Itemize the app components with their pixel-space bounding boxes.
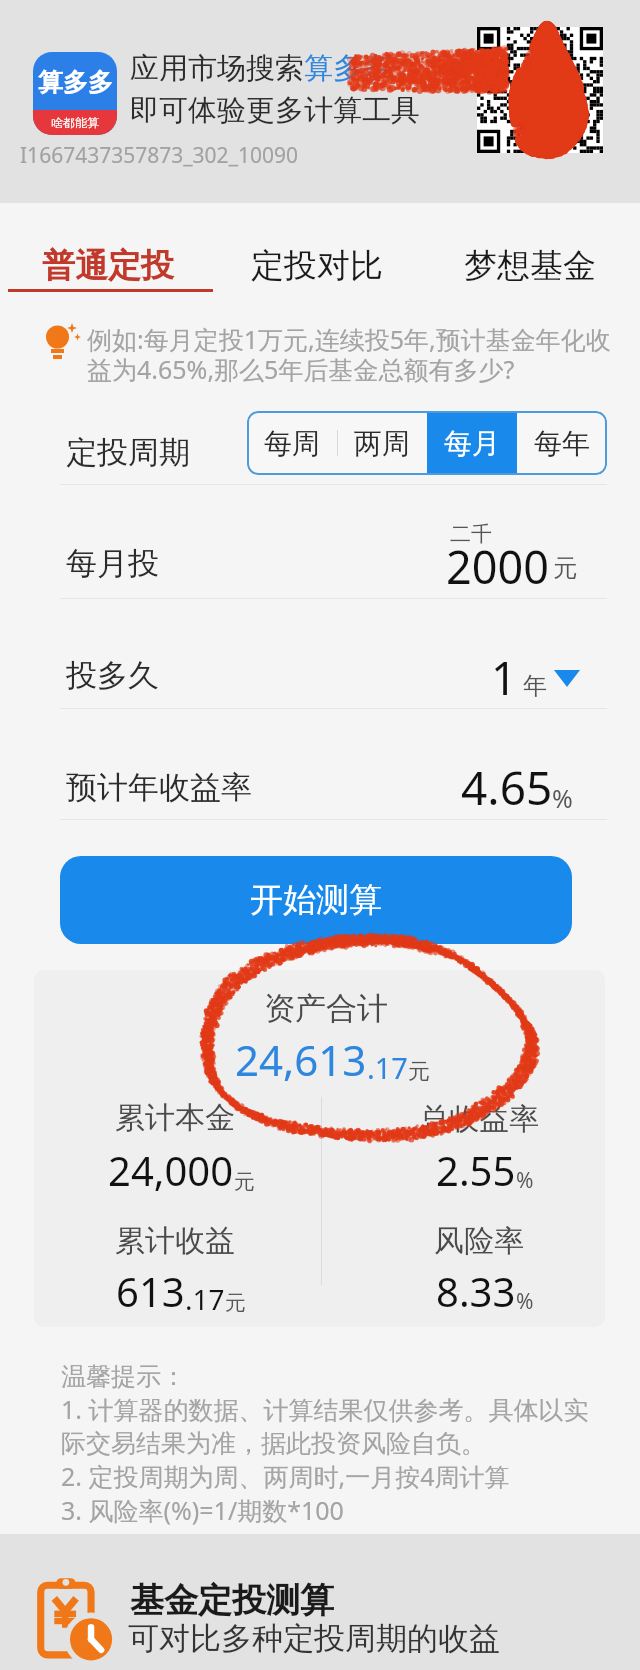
staticText: 基金定投测算 <box>130 1579 334 1622</box>
button[interactable]: 算多多 app icon <box>33 52 117 135</box>
staticText: 温馨提示： 1. 计算器的数据、计算结果仅供参考。具体以实 际交易结果为准，据此… <box>61 1361 589 1527</box>
staticText: 普通定投 <box>42 245 174 287</box>
staticText: 定投周期 <box>66 433 190 472</box>
staticText: 元 <box>408 1058 430 1086</box>
staticText: I1667437357873_302_10090 <box>20 141 299 170</box>
staticText: 2.55 <box>436 1143 516 1197</box>
staticText: 总收益率 <box>419 1100 539 1138</box>
button[interactable]: 定投对比 <box>239 243 395 289</box>
button[interactable]: 梦想基金 <box>452 243 608 289</box>
staticText: 元 <box>553 553 577 583</box>
staticText: 开始测算 <box>250 879 382 921</box>
staticText: 可对比多种定投周期的收益 <box>128 1619 500 1658</box>
staticText: 定投对比 <box>251 245 383 287</box>
button[interactable]: 开始测算 <box>60 856 572 944</box>
staticText: 24,000 <box>108 1143 234 1197</box>
staticText: 资产合计 <box>264 989 388 1028</box>
staticText: 预计年收益率 <box>66 768 252 807</box>
staticText: 应用市场搜索算多多 <box>130 50 391 87</box>
staticText: 两周 <box>354 426 410 461</box>
staticText: 每周 <box>264 426 320 461</box>
staticText: 2000 <box>446 536 549 597</box>
staticText: 即可体验更多计算工具 <box>130 92 420 129</box>
staticText: 613 <box>116 1264 185 1318</box>
staticText: 二千 <box>450 521 492 547</box>
button[interactable]: 每月 <box>427 411 517 475</box>
staticText: % <box>552 781 573 815</box>
staticText: % <box>516 1287 534 1316</box>
button[interactable]: 每年 <box>517 411 607 475</box>
staticText: 每月 <box>444 426 500 461</box>
staticText: % <box>516 1166 534 1195</box>
staticText: 累计本金 <box>115 1099 235 1137</box>
staticText: 8.33 <box>436 1264 516 1318</box>
staticText: 4.65 <box>461 756 553 819</box>
button[interactable]: 每周 <box>247 411 337 475</box>
button[interactable]: 选择投资年限 <box>482 644 596 706</box>
staticText: 算多多 <box>38 67 113 98</box>
staticText: .17 <box>367 1048 408 1087</box>
button[interactable]: 两周 <box>337 411 427 475</box>
staticText: 风险率 <box>434 1222 524 1260</box>
staticText: 1 <box>491 647 517 708</box>
staticText: 年 <box>523 671 547 701</box>
staticText: 累计收益 <box>115 1222 235 1260</box>
staticText: 啥都能算 <box>51 115 99 130</box>
staticText: 元 <box>234 1169 255 1195</box>
staticText: 梦想基金 <box>464 245 596 287</box>
staticText: 元 <box>225 1290 246 1316</box>
staticText: .17 <box>185 1280 225 1318</box>
staticText: 24,613 <box>235 1031 367 1088</box>
staticText: 每月投 <box>66 544 159 583</box>
staticText: 投多久 <box>66 656 159 695</box>
staticText: 例如:每月定投1万元,连续投5年,预计基金年化收 益为4.65%,那么5年后基金… <box>87 322 611 386</box>
staticText: 每年 <box>534 426 590 461</box>
button[interactable]: 普通定投 <box>30 243 186 289</box>
